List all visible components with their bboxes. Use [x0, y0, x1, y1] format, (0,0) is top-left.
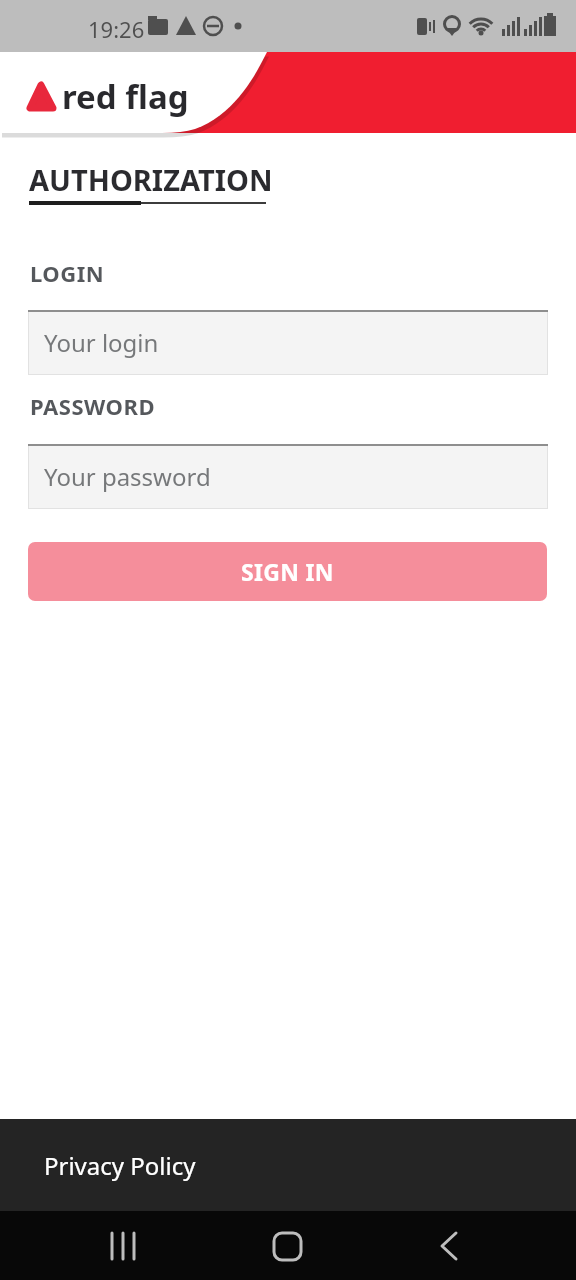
button[interactable]: Privacy Policy	[0, 1119, 576, 1211]
staticText: 19:26	[88, 14, 145, 44]
staticText: SIGN IN	[241, 556, 334, 587]
staticText: Privacy Policy	[44, 1149, 196, 1182]
staticText: Your password	[44, 460, 211, 493]
button[interactable]	[257, 1218, 317, 1274]
staticText: LOGIN	[30, 258, 105, 288]
button[interactable]	[95, 1218, 155, 1274]
button[interactable]: Your password	[28, 444, 548, 509]
staticText: PASSWORD	[30, 391, 156, 421]
staticText: AUTHORIZATION	[29, 160, 273, 199]
button[interactable]: Your login	[28, 310, 548, 375]
staticText: Your login	[44, 326, 159, 359]
button[interactable]: SIGN IN	[28, 542, 547, 601]
button[interactable]	[418, 1218, 478, 1274]
staticText: red flag	[62, 74, 189, 119]
